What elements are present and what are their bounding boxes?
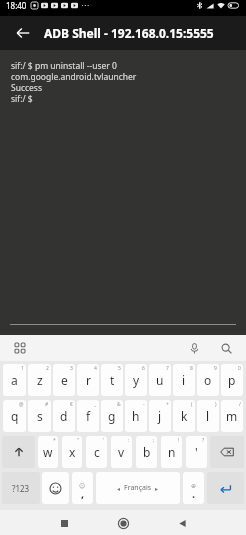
button[interactable]: Home (112, 512, 134, 534)
staticText: , (81, 486, 85, 501)
staticText: sif:/ $ pm uninstall --user 0 (11, 60, 117, 71)
button[interactable]: j (149, 400, 171, 432)
button[interactable]: u (149, 364, 171, 396)
staticText: ▸ (155, 485, 159, 492)
button[interactable]: Back (10, 20, 36, 46)
staticText: - (143, 401, 145, 408)
staticText: e (61, 372, 68, 388)
staticText: # (45, 401, 49, 408)
button[interactable]: e (53, 364, 75, 396)
staticText: b (143, 444, 151, 460)
button[interactable]: Search (216, 338, 236, 358)
staticText: j (158, 408, 162, 424)
staticText: ' (103, 437, 105, 444)
button[interactable]: i (173, 364, 195, 396)
staticText: @ (19, 401, 24, 408)
staticText: 0 (238, 365, 241, 372)
button[interactable]: t (101, 364, 123, 396)
button[interactable]: k (173, 400, 195, 432)
staticText: p (228, 372, 236, 388)
button[interactable]: s (28, 400, 51, 432)
staticText: 18:40 (6, 0, 27, 11)
button[interactable]: y (125, 364, 147, 396)
staticText: * (53, 437, 56, 444)
button[interactable]: r (77, 364, 99, 396)
staticText: w (43, 444, 53, 460)
button[interactable]: h (125, 400, 147, 432)
button[interactable]: ' (186, 436, 207, 468)
staticText: + (166, 401, 169, 408)
button[interactable]: z (28, 364, 51, 396)
button[interactable]: f (77, 400, 99, 432)
button[interactable]: Shift (2, 436, 35, 468)
staticText: g (108, 408, 116, 424)
button[interactable]: Clipboard (10, 338, 30, 358)
staticText: ? (202, 437, 205, 444)
staticText: z (37, 372, 43, 388)
staticText: 3 (70, 365, 73, 372)
button[interactable]: b (136, 436, 157, 468)
staticText: / (239, 401, 241, 408)
staticText: ' (195, 444, 198, 460)
staticText: " (77, 437, 80, 444)
staticText: & (117, 401, 121, 408)
staticText: t (110, 372, 115, 388)
button[interactable]: n (161, 436, 182, 468)
staticText: d (60, 408, 68, 424)
button[interactable]: ⊕ (183, 472, 204, 504)
staticText: ) (215, 401, 217, 408)
staticText: i (182, 372, 186, 388)
button[interactable]: d (53, 400, 75, 432)
staticText: 7 (166, 365, 169, 372)
button[interactable]: Emoji (42, 472, 69, 504)
staticText: sif:/ $ (11, 93, 33, 104)
staticText: 9 (214, 365, 217, 372)
staticText: q (11, 408, 19, 424)
staticText: c (94, 444, 100, 460)
staticText: x (69, 444, 76, 460)
staticText: a (11, 372, 18, 388)
button[interactable]: Symbols (2, 472, 40, 504)
staticText: 2 (46, 365, 49, 372)
staticText: ?123 (12, 483, 30, 494)
staticText: u (156, 372, 164, 388)
button[interactable]: x (62, 436, 82, 468)
button[interactable]: m (221, 400, 243, 432)
staticText: ☺ (79, 482, 86, 489)
button[interactable]: Recents (53, 512, 75, 534)
staticText: ; (153, 437, 155, 444)
staticText: m (226, 408, 238, 424)
staticText: . (192, 486, 196, 501)
staticText: s (37, 408, 43, 424)
staticText: 6 (142, 365, 145, 372)
staticText: _ (94, 401, 97, 408)
button[interactable]: ☺ (72, 472, 93, 504)
button[interactable]: q (3, 400, 26, 432)
button[interactable]: v (111, 436, 132, 468)
staticText: n (168, 444, 176, 460)
staticText: 4 (94, 365, 97, 372)
button[interactable]: l (197, 400, 219, 432)
button[interactable]: Enter (207, 472, 244, 504)
button[interactable]: c (86, 436, 107, 468)
button[interactable]: Backspace (210, 436, 244, 468)
staticText: ( (191, 401, 193, 408)
button[interactable]: g (101, 400, 123, 432)
button[interactable]: w (38, 436, 58, 468)
staticText: v (118, 444, 125, 460)
staticText: o (204, 372, 212, 388)
staticText: r (86, 372, 91, 388)
staticText: : (128, 437, 130, 444)
button[interactable]: Back (171, 512, 193, 534)
button[interactable]: a (3, 364, 26, 396)
button[interactable]: o (197, 364, 219, 396)
button[interactable]: p (221, 364, 243, 396)
staticText: l (206, 408, 210, 424)
staticText: h (132, 408, 140, 424)
staticText: 5 (118, 365, 121, 372)
staticText: com.google.android.tvlauncher (11, 71, 137, 82)
button[interactable]: Space (96, 472, 180, 504)
staticText: ADB Shell - 192.168.0.15:5555 (44, 25, 214, 41)
button[interactable]: Voice input (184, 338, 204, 358)
staticText: ⋯ (81, 1, 89, 10)
